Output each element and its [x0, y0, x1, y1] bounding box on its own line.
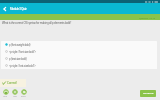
staticText: What is the correct CSS syntax for makin…	[2, 21, 72, 25]
staticText: Module 3 Quiz	[10, 7, 27, 11]
staticText: p {text-size:bold}	[9, 57, 27, 61]
button[interactable]: Lock	[2, 89, 9, 98]
staticText: CONTINUE	[143, 92, 154, 95]
staticText: <p style="font-size:bold">	[9, 50, 36, 54]
staticText: Hint	[13, 95, 17, 98]
button[interactable]: <p style="text-size:bold">	[1, 62, 157, 69]
button[interactable]: p {text-size:bold}	[1, 55, 157, 62]
staticText: Retry	[21, 95, 26, 98]
button[interactable]: Back	[1, 5, 9, 13]
button[interactable]: CONTINUE	[140, 90, 156, 97]
staticText: p {font-weight:bold}	[9, 43, 31, 47]
button[interactable]: <p style="font-size:bold">	[1, 48, 157, 55]
staticText: <p style="text-size:bold">	[9, 64, 36, 68]
button[interactable]: p {font-weight:bold}	[1, 41, 157, 48]
button[interactable]: Correct!	[0, 79, 26, 87]
staticText: Lock	[3, 95, 8, 98]
staticText: Question 1 of 10	[139, 16, 156, 19]
staticText: Correct!	[7, 81, 17, 85]
button[interactable]: Hint	[11, 89, 18, 98]
button[interactable]: Retry	[20, 89, 27, 98]
